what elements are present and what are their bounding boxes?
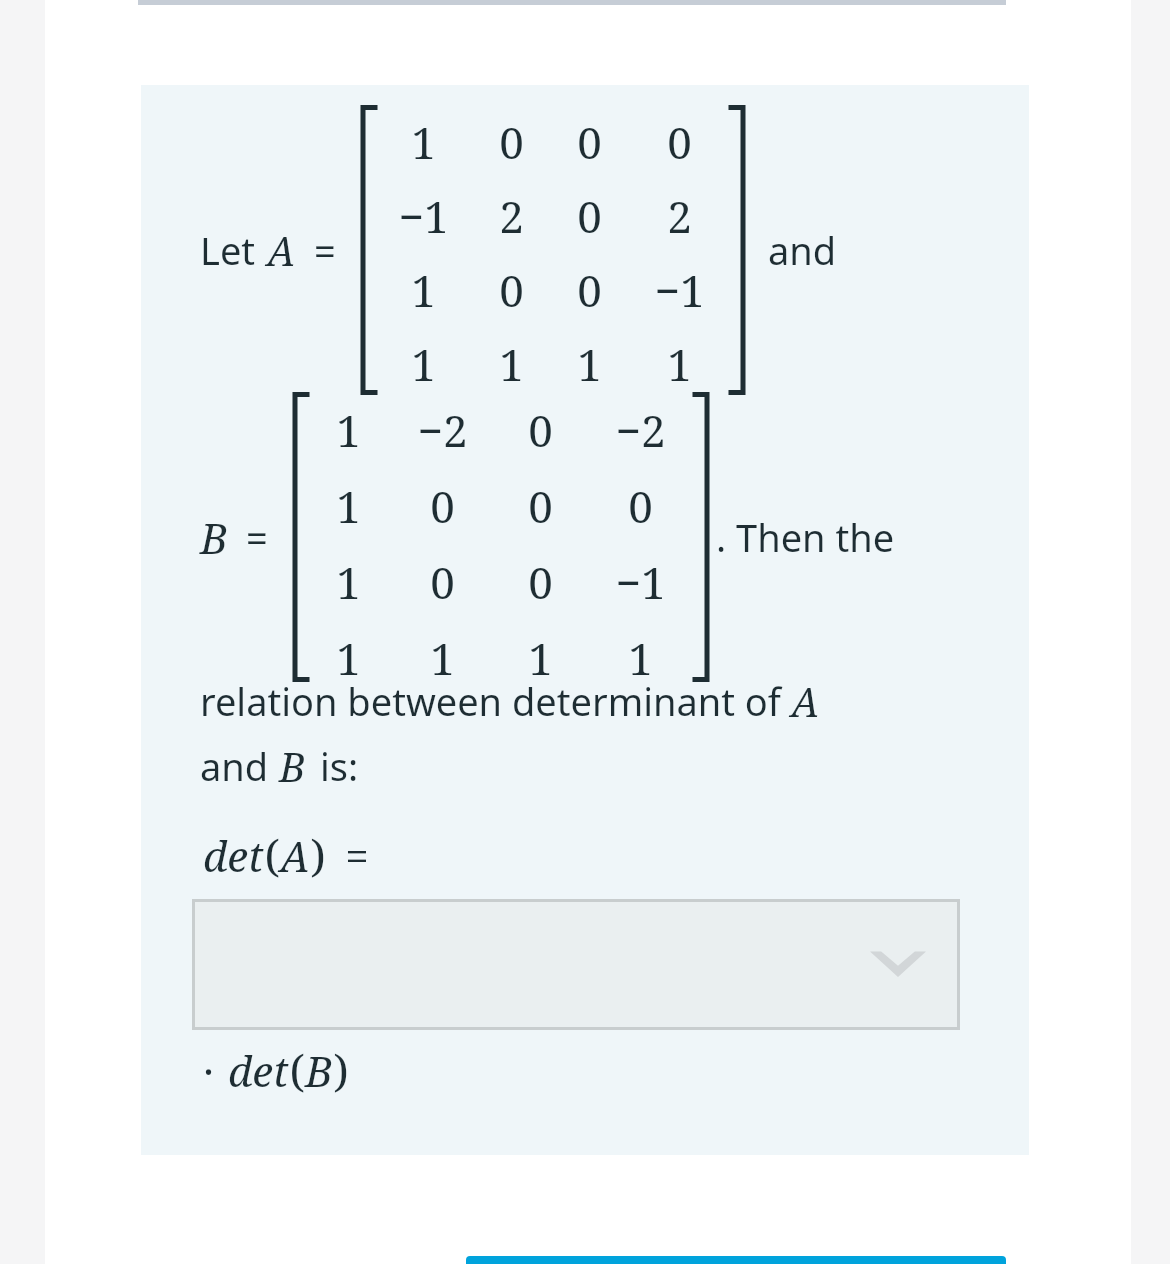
staticText: det	[203, 827, 264, 884]
staticText: 1	[336, 628, 361, 688]
staticText: 1	[577, 334, 602, 394]
staticText: B	[279, 739, 306, 793]
staticText: B	[200, 509, 228, 566]
staticText: 1	[336, 400, 361, 460]
staticText: =	[334, 827, 369, 884]
staticText: 1	[667, 334, 692, 394]
staticText: 2	[499, 186, 524, 246]
staticText: 0	[667, 112, 692, 172]
staticText: det	[228, 1042, 289, 1099]
staticText: −1	[615, 552, 666, 612]
staticText: 1	[411, 112, 436, 172]
staticText: (	[289, 1040, 305, 1100]
staticText: 1	[336, 476, 361, 536]
button[interactable]: Select relation value	[192, 899, 960, 1030]
staticText: 1	[411, 260, 436, 320]
staticText: (	[264, 825, 280, 885]
button[interactable]: Submit answer	[466, 1256, 1006, 1264]
staticText: 1	[430, 628, 455, 688]
staticText: is:	[310, 740, 359, 792]
staticText: 0	[499, 112, 524, 172]
staticText: and	[768, 224, 837, 276]
staticText: A	[791, 674, 820, 728]
staticText: =	[304, 224, 346, 276]
staticText: 0	[430, 476, 455, 536]
staticText: 0	[430, 552, 455, 612]
staticText: 1	[336, 552, 361, 612]
staticText: 0	[577, 186, 602, 246]
staticText: −1	[398, 186, 449, 246]
staticText: 0	[577, 112, 602, 172]
staticText: 0	[528, 476, 553, 536]
staticText: 0	[577, 260, 602, 320]
staticText: 0	[528, 400, 553, 460]
staticText: and	[200, 740, 279, 792]
staticText: Let	[200, 224, 265, 276]
staticText: A	[267, 223, 296, 277]
staticText: )	[310, 825, 326, 885]
staticText: 0	[499, 260, 524, 320]
staticText: =	[236, 511, 278, 563]
staticText: −1	[654, 260, 705, 320]
staticText: 1	[628, 628, 653, 688]
staticText: B	[305, 1042, 333, 1099]
staticText: 1	[499, 334, 524, 394]
staticText: . Then the	[716, 511, 895, 563]
staticText: −2	[417, 400, 468, 460]
staticText: 1	[411, 334, 436, 394]
staticText: )	[333, 1040, 349, 1100]
staticText: A	[280, 827, 310, 884]
staticText: −2	[615, 400, 666, 460]
staticText: 2	[667, 186, 692, 246]
staticText: 1	[528, 628, 553, 688]
staticText: relation between determinant of	[200, 675, 791, 727]
staticText: ·	[203, 1042, 214, 1099]
staticText: 0	[528, 552, 553, 612]
staticText: 0	[628, 476, 653, 536]
